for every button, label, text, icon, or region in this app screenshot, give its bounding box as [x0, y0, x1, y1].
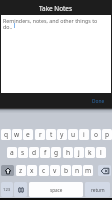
- button[interactable]: Backspace: [98, 165, 111, 176]
- staticText: w: [14, 130, 20, 139]
- button[interactable]: m: [83, 165, 93, 176]
- button[interactable]: d: [29, 147, 39, 158]
- staticText: h: [66, 148, 71, 157]
- staticText: k: [88, 148, 92, 157]
- button[interactable]: u: [68, 129, 78, 140]
- button[interactable]: 123: [1, 182, 13, 197]
- button[interactable]: v: [50, 165, 60, 176]
- button[interactable]: Done: [81, 94, 112, 107]
- staticText: return: [91, 187, 105, 193]
- staticText: i: [83, 130, 85, 139]
- staticText: t: [50, 130, 53, 139]
- button[interactable]: f: [40, 147, 50, 158]
- staticText: s: [21, 148, 25, 157]
- staticText: j: [78, 148, 80, 157]
- staticText: v: [53, 166, 57, 175]
- button[interactable]: o: [91, 129, 101, 140]
- staticText: d: [32, 148, 37, 157]
- button[interactable]: b: [61, 165, 71, 176]
- button[interactable]: w: [12, 129, 22, 140]
- button[interactable]: p: [102, 129, 112, 140]
- staticText: q: [4, 130, 9, 139]
- button[interactable]: a: [7, 147, 17, 158]
- button[interactable]: r: [35, 129, 45, 140]
- button[interactable]: h: [63, 147, 73, 158]
- button[interactable]: j: [74, 147, 84, 158]
- button[interactable]: x: [27, 165, 37, 176]
- staticText: c: [42, 166, 46, 175]
- staticText: o: [94, 130, 98, 139]
- button[interactable]: y: [57, 129, 67, 140]
- button[interactable]: Emoji: [14, 182, 27, 197]
- button[interactable]: e: [23, 129, 33, 140]
- button[interactable]: c: [39, 165, 49, 176]
- button[interactable]: n: [72, 165, 82, 176]
- button[interactable]: q: [1, 129, 11, 140]
- staticText: space: [50, 187, 63, 193]
- button[interactable]: return: [85, 182, 110, 197]
- button[interactable]: s: [18, 147, 28, 158]
- button[interactable]: z: [16, 165, 26, 176]
- staticText: e: [26, 130, 30, 139]
- staticText: l: [100, 148, 102, 157]
- staticText: n: [75, 166, 80, 175]
- staticText: m: [85, 166, 92, 175]
- staticText: u: [71, 130, 76, 139]
- button[interactable]: space: [29, 182, 83, 197]
- staticText: y: [60, 130, 64, 139]
- button[interactable]: t: [46, 129, 56, 140]
- staticText: z: [19, 166, 23, 175]
- staticText: Done: [92, 98, 105, 105]
- button[interactable]: Shift: [1, 165, 14, 176]
- button[interactable]: i: [79, 129, 89, 140]
- staticText: 123: [3, 187, 11, 193]
- staticText: f: [44, 148, 47, 157]
- button[interactable]: Reminders, notes, and other things to do…: [1, 15, 111, 93]
- staticText: g: [54, 148, 59, 157]
- button[interactable]: l: [96, 147, 106, 158]
- staticText: a: [10, 148, 14, 157]
- staticText: x: [30, 166, 34, 175]
- staticText: b: [64, 166, 69, 175]
- staticText: Reminders, notes, and other things to do…: [3, 17, 98, 31]
- staticText: Take Notes: [39, 4, 73, 13]
- staticText: r: [39, 130, 42, 139]
- button[interactable]: g: [51, 147, 61, 158]
- button[interactable]: k: [85, 147, 95, 158]
- staticText: p: [105, 130, 110, 139]
